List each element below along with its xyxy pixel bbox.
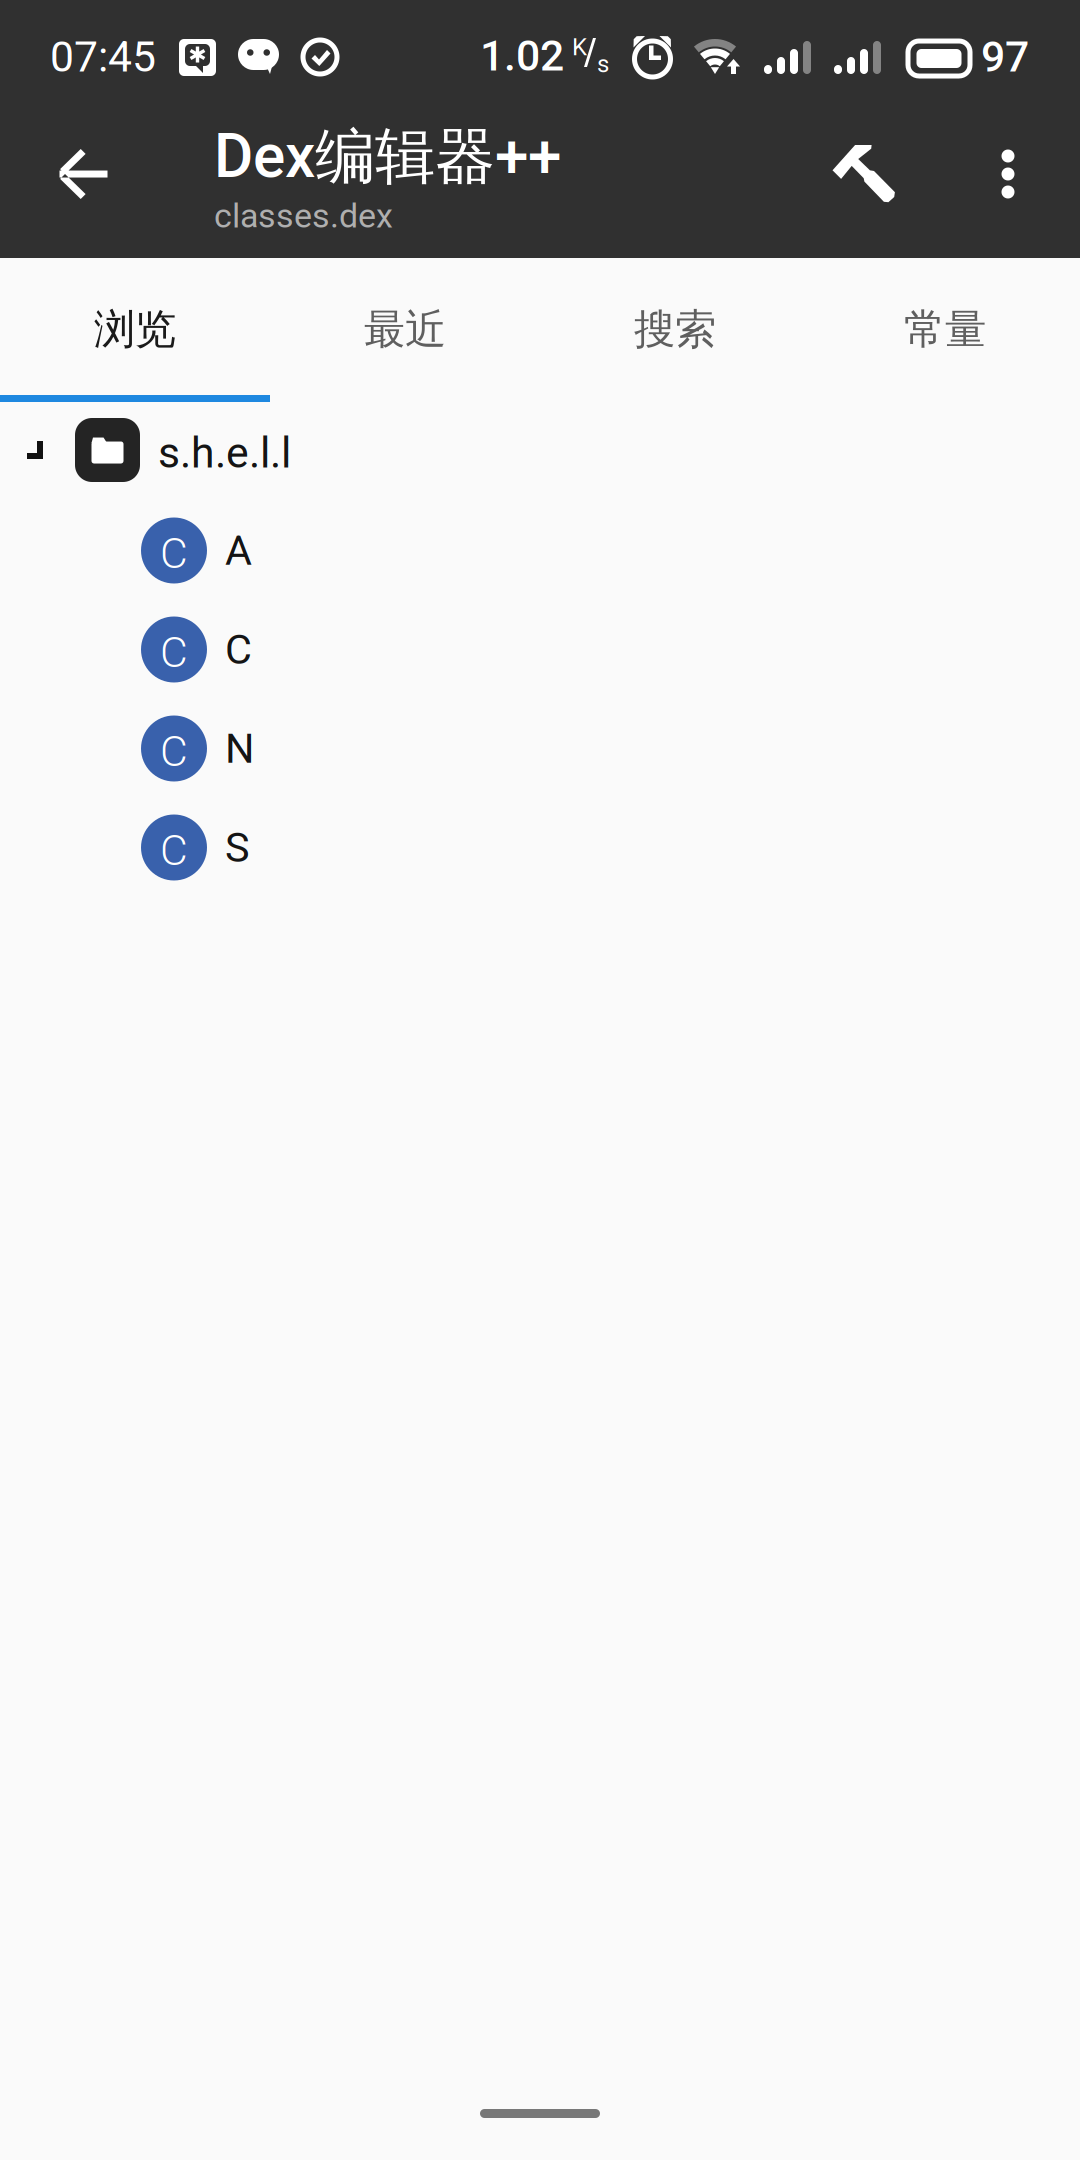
staticText: classes.dex [214,196,393,236]
staticText: 最近 [364,303,446,356]
staticText: s.h.e.l.l [158,428,291,478]
button[interactable]: 常量 [810,258,1080,395]
staticText: C [225,625,252,674]
staticText: 97 [981,32,1029,82]
staticText: 1.02 [480,31,564,81]
staticText: 07:45 [50,32,156,82]
staticText: 浏览 [94,303,176,356]
staticText: C [160,726,188,776]
staticText: C [160,627,188,677]
staticText: C [160,528,188,578]
staticText: s [597,50,609,78]
button[interactable]: C [0,798,1080,897]
button[interactable]: Back [6,95,173,253]
button[interactable]: s.h.e.l.l [0,410,1080,490]
button[interactable]: C [0,501,1080,600]
button[interactable]: Dex编辑器++ [214,119,634,236]
staticText: 搜索 [634,303,716,356]
button[interactable]: C [0,600,1080,699]
button[interactable]: 浏览 [0,258,270,395]
staticText: C [160,825,188,875]
button[interactable]: Build [801,95,927,253]
button[interactable]: More options [938,95,1078,253]
button[interactable]: 最近 [270,258,540,395]
staticText: S [225,823,250,872]
staticText: Dex编辑器++ [214,119,561,195]
staticText: K [572,33,587,61]
staticText: N [225,724,254,773]
button[interactable]: 搜索 [540,258,810,395]
staticText: 常量 [904,303,986,356]
staticText: A [225,526,252,575]
button[interactable]: C [0,699,1080,798]
